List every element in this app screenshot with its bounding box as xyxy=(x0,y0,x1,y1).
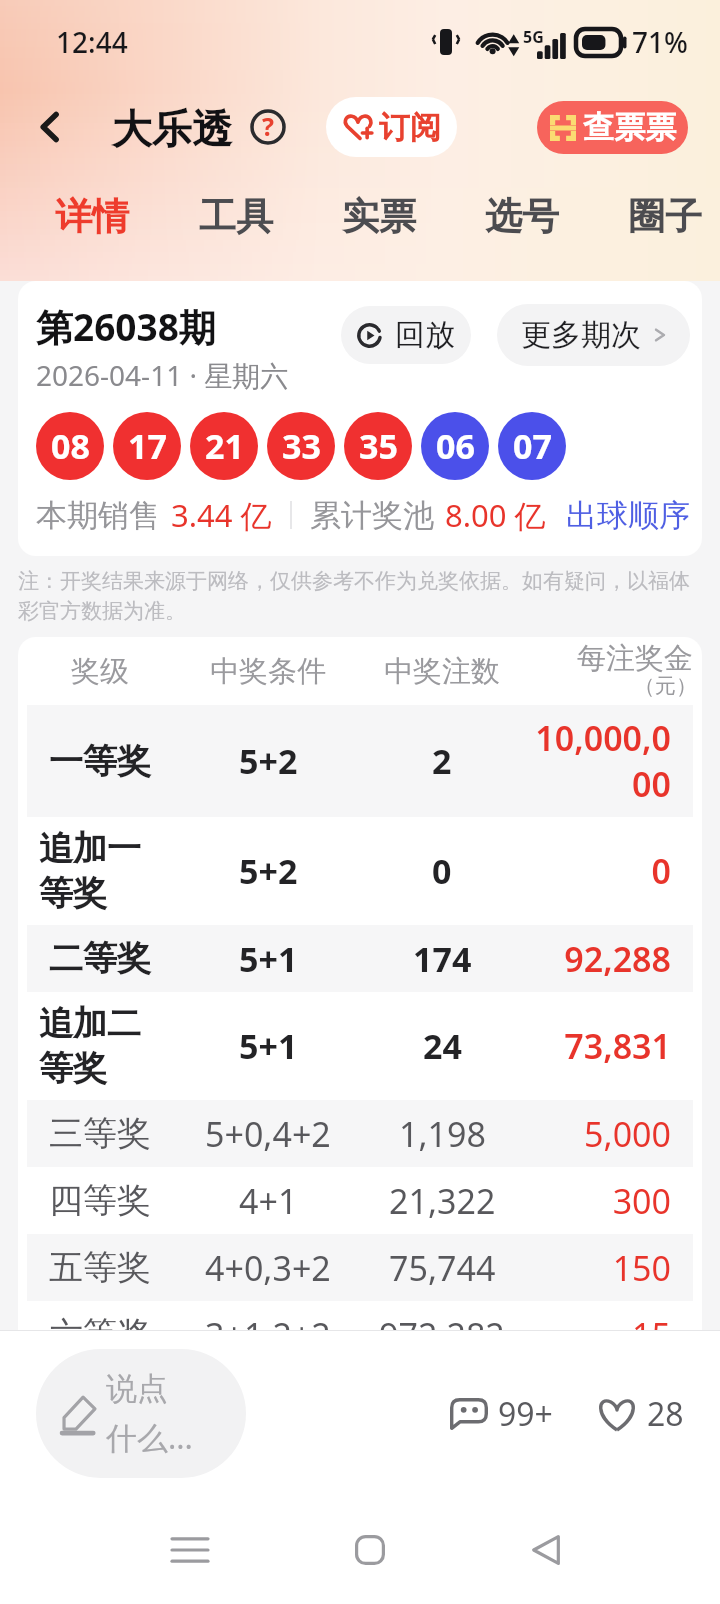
staticText: 73,831 xyxy=(531,1023,671,1069)
staticText: 5+0,4+2 xyxy=(205,1111,331,1157)
staticText: 注：开奖结果来源于网络，仅供参考不作为兑奖依据。如有疑问，以福体彩官方数据为准。 xyxy=(18,568,704,625)
staticText: 12:44 xyxy=(56,23,128,61)
button[interactable]: 追加一等奖 xyxy=(27,817,693,925)
staticText: 4+1 xyxy=(239,1178,298,1224)
staticText: 三等奖 xyxy=(49,1112,151,1155)
staticText: 17 xyxy=(128,423,167,469)
staticText: 0 xyxy=(531,848,671,894)
staticText: 3+1,2+2 xyxy=(205,1312,331,1330)
staticText: 972,282 xyxy=(379,1312,505,1330)
button[interactable]: Help xyxy=(248,107,288,147)
button[interactable]: 二等奖 xyxy=(27,925,693,992)
button[interactable]: Home xyxy=(330,1510,410,1590)
staticText: 2026-04-11 · 星期六 xyxy=(36,356,289,394)
staticText: 每注奖金 xyxy=(577,640,693,677)
staticText: 07 xyxy=(513,423,552,469)
staticText: 71% xyxy=(632,23,688,61)
staticText: 选号 xyxy=(485,193,559,240)
button[interactable]: 详情 xyxy=(20,170,164,262)
staticText: 15 xyxy=(531,1312,671,1330)
staticText: 4+0,3+2 xyxy=(205,1245,331,1291)
button[interactable]: 圈子 xyxy=(593,170,720,262)
staticText: 查票票 xyxy=(583,108,676,147)
staticText: 第26038期 xyxy=(36,301,216,352)
staticText: 75,744 xyxy=(389,1245,496,1291)
staticText: 5+1 xyxy=(239,936,298,982)
staticText: 150 xyxy=(531,1245,671,1291)
staticText: 3.44 亿 xyxy=(171,494,272,536)
button[interactable]: 更多期次 xyxy=(497,304,690,366)
button[interactable]: Recents xyxy=(150,1510,230,1590)
button[interactable]: 说点 什么... xyxy=(36,1349,246,1478)
staticText: 300 xyxy=(531,1178,671,1224)
button[interactable]: Back xyxy=(28,105,72,149)
button[interactable]: 出球顺序 xyxy=(566,496,690,535)
staticText: 累计奖池 xyxy=(310,496,434,535)
staticText: 详情 xyxy=(55,193,129,240)
staticText: （元） xyxy=(634,673,697,699)
staticText: 1,198 xyxy=(399,1111,486,1157)
staticText: 21,322 xyxy=(389,1178,496,1224)
button[interactable]: 四等奖 xyxy=(27,1167,693,1234)
button[interactable]: 回放 xyxy=(341,306,471,364)
button[interactable]: 一等奖 xyxy=(27,705,693,817)
staticText: 说点 什么... xyxy=(106,1369,193,1458)
button[interactable]: 28 xyxy=(591,1388,688,1440)
button[interactable]: 选号 xyxy=(450,170,593,262)
button[interactable]: 订阅 xyxy=(326,97,457,157)
staticText: 追加一等奖 xyxy=(39,827,161,915)
staticText: 中奖注数 xyxy=(384,653,500,690)
staticText: 10,000,000 xyxy=(531,715,671,807)
staticText: 33 xyxy=(282,423,321,469)
staticText: 06 xyxy=(436,423,475,469)
staticText: 2 xyxy=(432,738,452,784)
button[interactable]: 追加二等奖 xyxy=(27,992,693,1100)
staticText: 5+2 xyxy=(239,848,298,894)
staticText: 92,288 xyxy=(531,936,671,982)
button[interactable]: 实票 xyxy=(307,170,450,262)
staticText: 二等奖 xyxy=(49,937,151,980)
button[interactable]: 工具 xyxy=(164,170,307,262)
staticText: 0 xyxy=(432,848,452,894)
staticText: 174 xyxy=(413,936,472,982)
staticText: 99+ xyxy=(498,1392,553,1436)
staticText: 更多期次 xyxy=(521,316,641,354)
staticText: 追加二等奖 xyxy=(39,1002,161,1090)
staticText: 工具 xyxy=(199,193,273,240)
staticText: 圈子 xyxy=(628,193,702,240)
staticText: 5G xyxy=(523,26,544,48)
staticText: 24 xyxy=(423,1023,462,1069)
staticText: 订阅 xyxy=(379,108,441,147)
staticText: 35 xyxy=(359,423,398,469)
staticText: 5+1 xyxy=(239,1023,298,1069)
staticText: 5+2 xyxy=(239,738,298,784)
staticText: 实票 xyxy=(342,193,416,240)
staticText: 8.00 亿 xyxy=(445,494,546,536)
staticText: 六等奖 xyxy=(49,1313,151,1330)
button[interactable]: 六等奖 xyxy=(27,1301,693,1330)
staticText: ? xyxy=(262,109,274,143)
button[interactable]: 三等奖 xyxy=(27,1100,693,1167)
staticText: 大乐透 xyxy=(112,104,232,154)
staticText: 08 xyxy=(51,423,90,469)
staticText: 一等奖 xyxy=(49,740,151,783)
button[interactable]: 查票票 xyxy=(537,101,688,154)
button[interactable]: 五等奖 xyxy=(27,1234,693,1301)
staticText: 本期销售 xyxy=(36,496,160,535)
button[interactable]: 99+ xyxy=(446,1388,557,1440)
staticText: 21 xyxy=(205,423,244,469)
staticText: 5,000 xyxy=(531,1111,671,1157)
staticText: 五等奖 xyxy=(49,1246,151,1289)
staticText: 四等奖 xyxy=(49,1179,151,1222)
staticText: 中奖条件 xyxy=(210,653,326,690)
staticText: 回放 xyxy=(395,316,455,354)
button[interactable]: Back xyxy=(506,1510,586,1590)
staticText: 奖级 xyxy=(71,653,129,690)
staticText: 28 xyxy=(647,1392,684,1436)
